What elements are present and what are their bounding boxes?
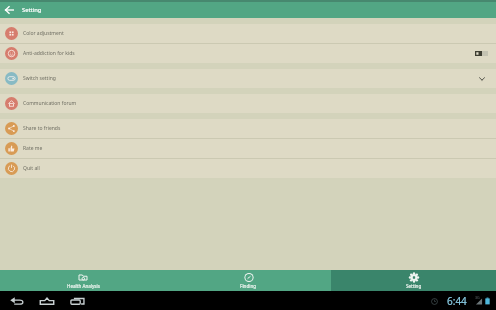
staticText: 3G [475, 295, 480, 300]
button[interactable]: Share to friends [0, 119, 496, 138]
button[interactable]: Anti-addiction for kids [0, 44, 496, 63]
staticText: Health Analysis [67, 283, 100, 289]
staticText: 6:44 [447, 294, 467, 308]
staticText: Finding [240, 283, 257, 289]
staticText: Setting [406, 283, 422, 289]
staticText: Quit all [23, 165, 40, 172]
button[interactable]: Health Analysis [0, 270, 166, 291]
button[interactable]: Switch setting [0, 69, 496, 88]
button[interactable]: Setting [331, 270, 496, 291]
staticText: Share to friends [23, 125, 61, 132]
button[interactable]: Back [2, 291, 32, 310]
button[interactable]: Color adjustment [0, 24, 496, 43]
button[interactable]: Home [32, 291, 62, 310]
button[interactable]: Back [0, 2, 18, 18]
staticText: Anti-addiction for kids [23, 50, 75, 57]
staticText: Setting [22, 6, 42, 14]
button[interactable]: Rate me [0, 139, 496, 158]
button[interactable]: Communication forum [0, 94, 496, 113]
button[interactable]: Finding [166, 270, 331, 291]
button[interactable]: Quit all [0, 159, 496, 178]
button[interactable]: Recent apps [62, 291, 92, 310]
staticText: Rate me [23, 145, 43, 152]
staticText: Communication forum [23, 100, 77, 107]
staticText: Switch setting [23, 75, 56, 82]
staticText: Color adjustment [23, 30, 64, 37]
